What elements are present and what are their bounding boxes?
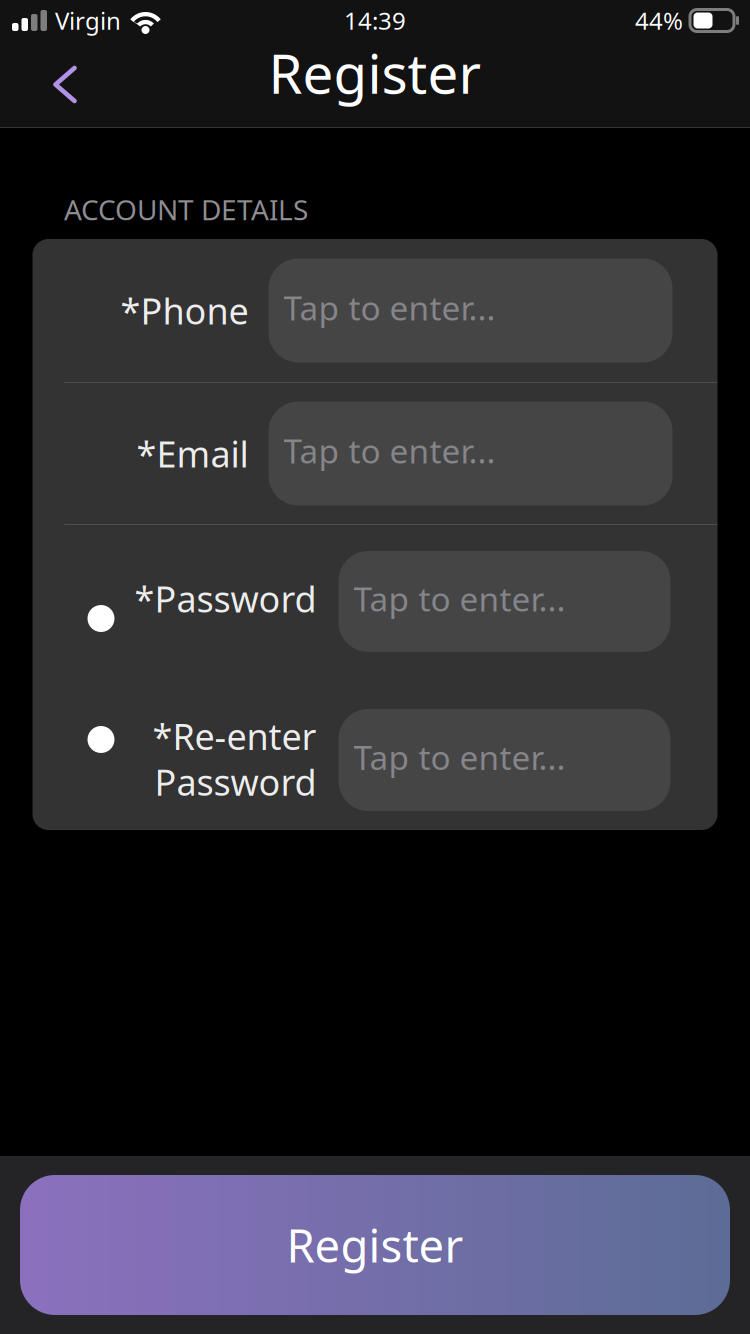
staticText: *Password xyxy=(134,575,316,622)
staticText: Register xyxy=(286,1215,463,1275)
button[interactable]: Tap to enter... xyxy=(338,709,670,811)
staticText: *Email xyxy=(136,430,248,477)
staticText: Virgin xyxy=(55,5,121,36)
staticText: 14:39 xyxy=(344,5,406,36)
staticText: ACCOUNT DETAILS xyxy=(64,191,308,228)
button[interactable]: Back xyxy=(34,48,96,120)
staticText: Tap to enter... xyxy=(283,428,495,473)
staticText: Tap to enter... xyxy=(353,576,565,621)
button[interactable]: Register xyxy=(20,1175,730,1315)
staticText: Password xyxy=(154,758,316,806)
button[interactable]: Tap to enter... xyxy=(268,401,672,505)
staticText: Register xyxy=(268,36,481,109)
button[interactable]: Tap to enter... xyxy=(268,258,672,362)
staticText: *Re-enter xyxy=(152,712,316,760)
staticText: *Phone xyxy=(120,287,248,334)
button[interactable]: Tap to enter... xyxy=(338,551,670,652)
staticText: 44% xyxy=(635,5,683,36)
staticText: Tap to enter... xyxy=(283,285,495,330)
staticText: Tap to enter... xyxy=(353,735,565,779)
